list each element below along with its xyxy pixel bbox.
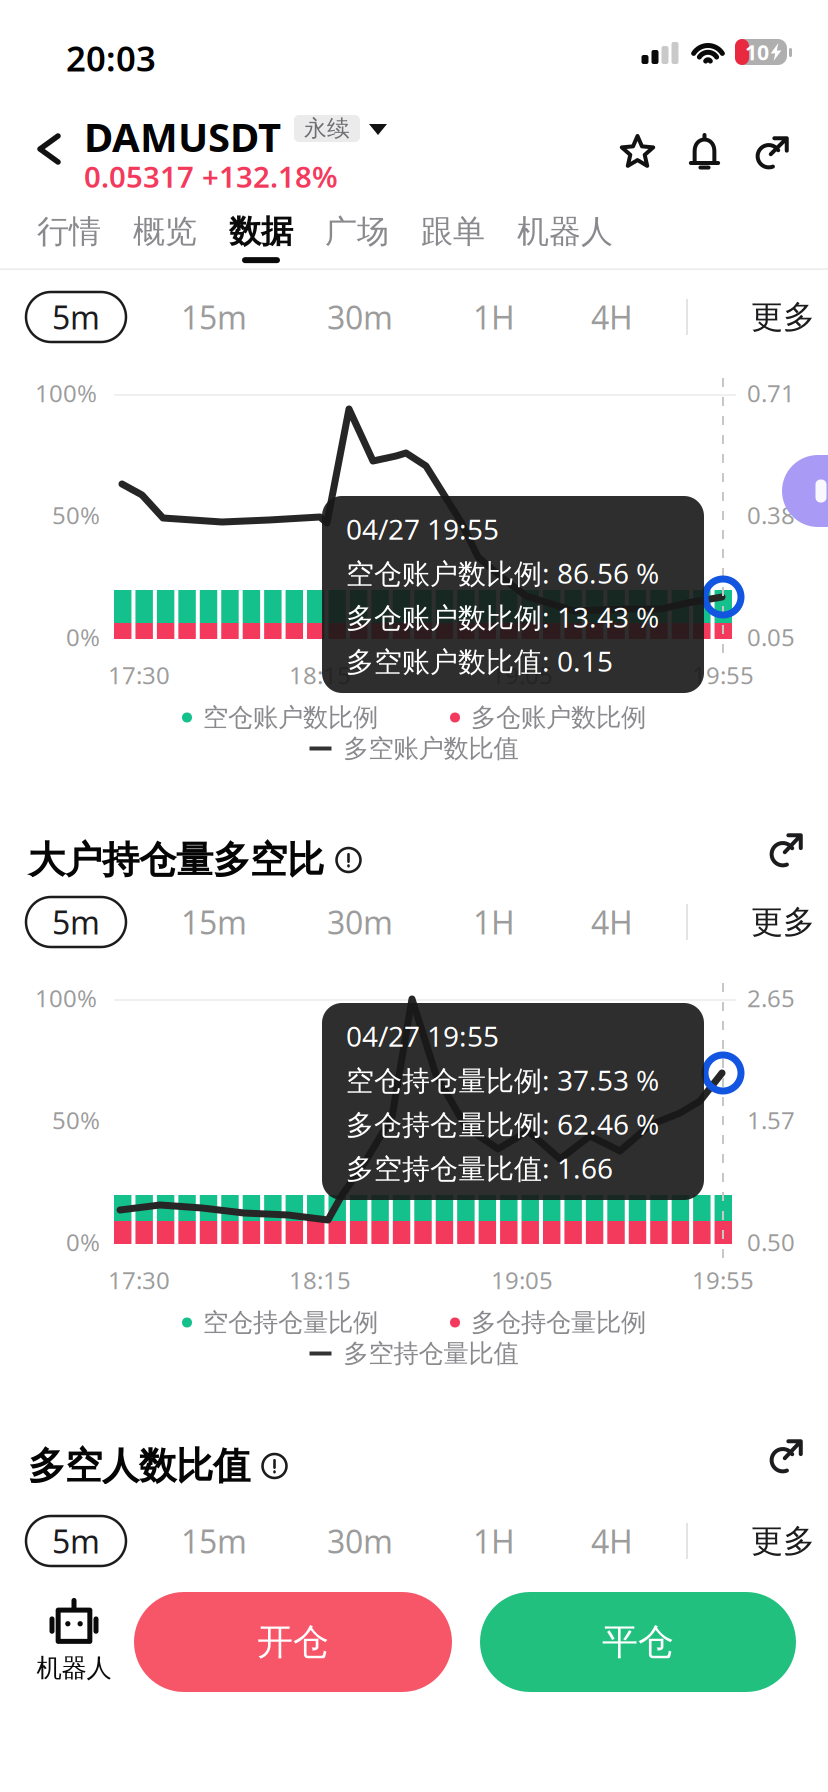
staticText: 永续	[304, 115, 350, 142]
staticText: 多空人数比值	[28, 1443, 250, 1489]
staticText: 5m	[52, 901, 100, 943]
staticText: 0.05	[747, 621, 795, 653]
staticText: 18:15	[289, 659, 351, 691]
button[interactable]: Price alerts	[674, 119, 735, 186]
staticText: 15m	[181, 1520, 247, 1562]
button[interactable]: 1H	[470, 897, 518, 947]
staticText: 空仓持仓量比例: 37.53 %	[346, 1061, 659, 1099]
button[interactable]: Open full chart	[759, 822, 814, 878]
staticText: 开仓	[257, 1620, 329, 1664]
staticText: 04/27 19:55	[346, 510, 499, 548]
button[interactable]: 1H	[470, 292, 518, 342]
button[interactable]: Back	[18, 114, 80, 184]
staticText: 10	[745, 38, 769, 66]
staticText: 多空持仓量比值	[343, 1338, 518, 1369]
button[interactable]: 广场	[325, 212, 389, 263]
button[interactable]: Add to favorites	[605, 119, 670, 184]
button[interactable]: Share	[741, 121, 804, 184]
staticText: 更多	[751, 297, 815, 337]
button[interactable]: 开仓	[134, 1592, 452, 1692]
staticText: 4H	[591, 296, 633, 338]
staticText: 5m	[52, 296, 100, 338]
button[interactable]: 5m	[26, 1516, 126, 1566]
staticText: 大户持仓量多空比	[28, 837, 324, 883]
staticText: 多空账户数比值: 0.15	[346, 642, 613, 680]
button[interactable]: 机器人	[18, 1592, 130, 1692]
staticText: 数据	[229, 212, 293, 251]
button[interactable]: 概览	[133, 212, 197, 263]
staticText: 跟单	[421, 212, 485, 251]
staticText: 30m	[327, 296, 393, 338]
button[interactable]: 30m	[324, 897, 396, 947]
staticText: 0%	[66, 1226, 100, 1258]
staticText: 更多	[751, 902, 815, 942]
button[interactable]: 30m	[324, 292, 396, 342]
button[interactable]: 更多	[744, 1516, 822, 1566]
staticText: 19:55	[692, 659, 754, 691]
staticText: 空仓账户数比例: 86.56 %	[346, 554, 659, 592]
staticText: 50%	[52, 499, 100, 531]
button[interactable]: 跟单	[421, 212, 485, 263]
button[interactable]: 机器人	[517, 212, 613, 263]
staticText: 多仓持仓量比例: 62.46 %	[346, 1105, 659, 1143]
button[interactable]: 30m	[324, 1516, 396, 1566]
staticText: 1H	[473, 296, 515, 338]
staticText: 多仓账户数比例: 13.43 %	[346, 598, 659, 636]
button[interactable]: 4H	[588, 897, 636, 947]
button[interactable]: 4H	[588, 292, 636, 342]
staticText: DAMUSDT	[84, 110, 281, 163]
button[interactable]: 行情	[37, 212, 101, 263]
staticText: 0%	[66, 621, 100, 653]
button[interactable]: 15m	[182, 292, 246, 342]
staticText: 20:03	[66, 35, 156, 81]
staticText: 19:55	[692, 1264, 754, 1296]
button[interactable]: 15m	[182, 1516, 246, 1566]
button[interactable]: AI assistant	[782, 455, 828, 527]
staticText: 1.57	[747, 1104, 795, 1136]
button[interactable]: 5m	[26, 897, 126, 947]
staticText: 19:05	[491, 1264, 553, 1296]
staticText: 行情	[37, 212, 101, 251]
staticText: 平仓	[602, 1620, 674, 1664]
staticText: 17:30	[108, 1264, 170, 1296]
staticText: 多空账户数比值	[343, 733, 518, 764]
staticText: 0.38	[747, 499, 795, 531]
staticText: 2.65	[747, 982, 795, 1014]
staticText: 100%	[35, 982, 97, 1014]
staticText: 18:15	[289, 1264, 351, 1296]
staticText: 50%	[52, 1104, 100, 1136]
staticText: 多仓持仓量比例	[471, 1307, 646, 1338]
button[interactable]: 更多	[744, 292, 822, 342]
staticText: 15m	[181, 296, 247, 338]
staticText: 15m	[181, 901, 247, 943]
staticText: 30m	[327, 901, 393, 943]
button[interactable]: 15m	[182, 897, 246, 947]
button[interactable]: 4H	[588, 1516, 636, 1566]
staticText: 空仓持仓量比例	[203, 1307, 378, 1338]
button[interactable]: 平仓	[480, 1592, 796, 1692]
staticText: 30m	[327, 1520, 393, 1562]
staticText: 4H	[591, 1520, 633, 1562]
staticText: 机器人	[36, 1652, 111, 1683]
staticText: 更多	[751, 1521, 815, 1561]
staticText: 100%	[35, 377, 97, 409]
staticText: 5m	[52, 1520, 100, 1562]
staticText: 机器人	[517, 212, 613, 251]
button[interactable]: 1H	[470, 1516, 518, 1566]
staticText: 17:30	[108, 659, 170, 691]
staticText: 19:05	[491, 659, 553, 691]
staticText: 1H	[473, 1520, 515, 1562]
staticText: 多仓账户数比例	[471, 702, 646, 733]
staticText: 0.50	[747, 1226, 795, 1258]
button[interactable]: 数据	[229, 212, 293, 263]
staticText: 1H	[473, 901, 515, 943]
staticText: 4H	[591, 901, 633, 943]
staticText: 04/27 19:55	[346, 1017, 499, 1055]
staticText: 多空持仓量比值: 1.66	[346, 1149, 613, 1187]
button[interactable]: Open full chart	[759, 1428, 814, 1484]
button[interactable]: 5m	[26, 292, 126, 342]
staticText: 概览	[133, 212, 197, 251]
staticText: 0.05317 +132.18%	[84, 157, 338, 196]
button[interactable]: 更多	[744, 897, 822, 947]
staticText: 广场	[325, 212, 389, 251]
